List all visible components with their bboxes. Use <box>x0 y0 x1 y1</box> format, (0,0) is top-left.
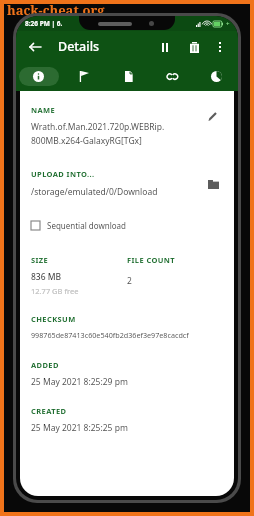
button[interactable]: Sequential download <box>31 218 126 233</box>
staticText: UPLOAD INTO... <box>31 169 95 179</box>
staticText: CHECKSUM <box>31 314 76 324</box>
staticText: FILE COUNT <box>127 255 176 265</box>
staticText: ADDED <box>31 360 59 370</box>
button[interactable]: Trackers <box>150 62 194 91</box>
staticText: 836 MB <box>31 271 62 283</box>
staticText: NAME <box>31 105 56 115</box>
button[interactable]: Info <box>16 62 61 91</box>
staticText: CREATED <box>31 406 67 416</box>
button[interactable]: Choose folder <box>202 173 224 195</box>
staticText: Sequential download <box>47 220 126 231</box>
staticText: 12.77 GB free <box>31 286 79 296</box>
button[interactable]: Files <box>106 62 150 91</box>
button[interactable]: Pieces <box>194 62 238 91</box>
staticText: Details <box>58 38 100 55</box>
staticText: + <box>226 20 230 28</box>
staticText: Wrath.of.Man.2021.720p.WEBRip. <box>31 121 165 133</box>
button[interactable]: Delete <box>184 37 204 57</box>
staticText: SIZE <box>31 255 49 265</box>
staticText: 2 <box>127 275 132 287</box>
button[interactable]: Flag <box>61 62 106 91</box>
staticText: hack-cheat.org <box>7 1 105 19</box>
button[interactable]: More options <box>211 38 229 56</box>
button[interactable]: Edit name <box>202 105 224 127</box>
staticText: 8:26 PM | 6. <box>25 19 63 28</box>
staticText: 25 May 2021 8:25:29 pm <box>31 376 128 388</box>
staticText: /storage/emulated/0/Download <box>31 186 158 198</box>
button[interactable]: Pause <box>155 37 175 57</box>
button[interactable]: Back <box>25 37 45 57</box>
staticText: 998765de87413c60e540fb2d36ef3e97e8cacdcf <box>31 330 189 340</box>
staticText: 25 May 2021 8:25:25 pm <box>31 422 128 434</box>
staticText: 800MB.x264-GalaxyRG[TGx] <box>31 135 142 147</box>
